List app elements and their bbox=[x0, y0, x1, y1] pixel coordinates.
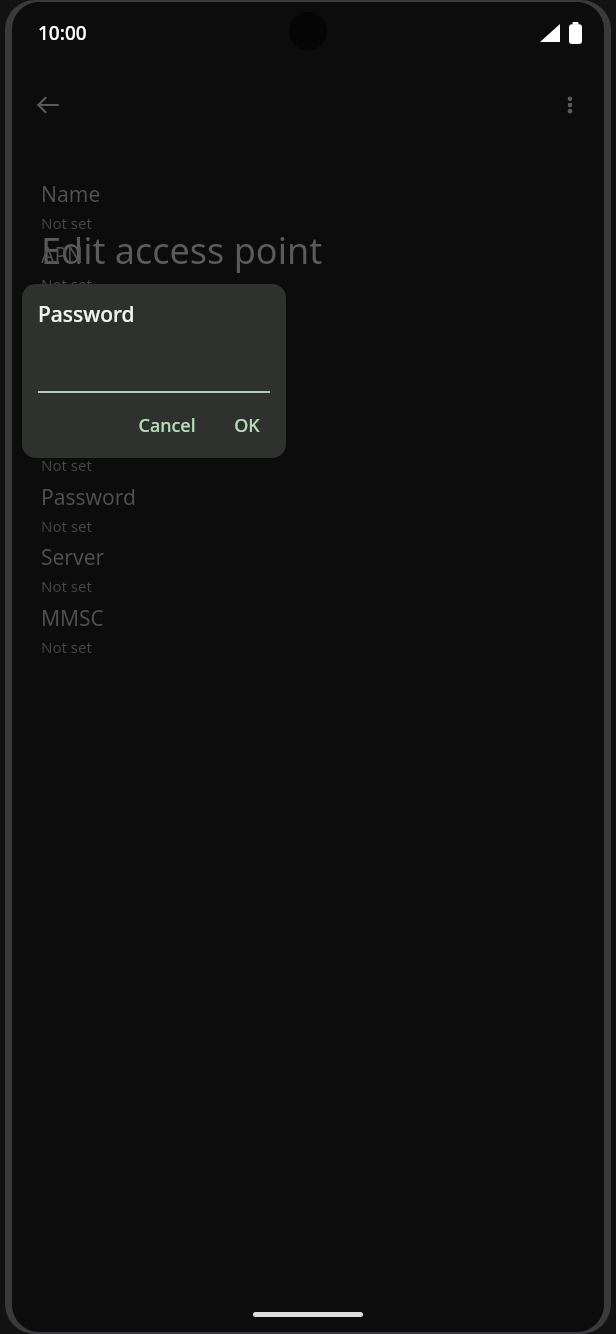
button[interactable]: Back bbox=[24, 81, 72, 129]
button[interactable]: OK bbox=[224, 407, 270, 444]
staticText: Server bbox=[41, 543, 105, 572]
button[interactable]: MMSC bbox=[12, 602, 604, 665]
button[interactable]: Cancel bbox=[128, 407, 206, 444]
staticText: Not set bbox=[41, 274, 92, 294]
button[interactable]: More options bbox=[546, 81, 594, 129]
staticText: Edit access point bbox=[41, 226, 323, 275]
staticText: OK bbox=[234, 413, 260, 438]
button[interactable]: Server bbox=[12, 541, 604, 604]
button[interactable]: Port bbox=[12, 360, 604, 423]
staticText: Password bbox=[41, 483, 136, 512]
button[interactable]: APN bbox=[12, 239, 604, 302]
staticText: Not set bbox=[41, 213, 92, 233]
button[interactable]: Name bbox=[12, 178, 604, 241]
button[interactable] bbox=[38, 353, 270, 393]
staticText: Password bbox=[38, 300, 135, 329]
staticText: MMSC bbox=[41, 604, 104, 633]
staticText: Not set bbox=[41, 455, 92, 475]
staticText: 10:00 bbox=[38, 20, 87, 46]
staticText: Not set bbox=[41, 576, 92, 596]
button[interactable]: Proxy bbox=[12, 299, 604, 362]
staticText: Cancel bbox=[138, 413, 196, 438]
staticText: Not set bbox=[41, 637, 92, 657]
staticText: Name bbox=[41, 180, 101, 209]
staticText: APN bbox=[41, 241, 84, 270]
staticText: Not set bbox=[41, 516, 92, 536]
staticText: Username bbox=[41, 422, 144, 451]
staticText: Proxy bbox=[41, 301, 97, 330]
button[interactable]: Password bbox=[12, 481, 604, 544]
button[interactable]: Username bbox=[12, 420, 604, 483]
